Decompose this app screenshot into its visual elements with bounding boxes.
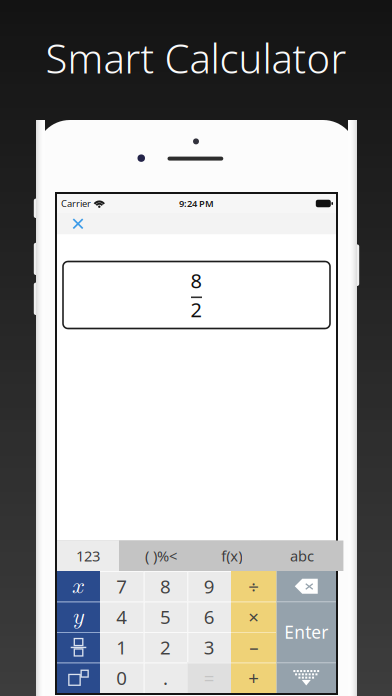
staticText: 9 xyxy=(204,574,215,599)
staticText: 𝑥 xyxy=(72,575,85,598)
button[interactable]: Variable y xyxy=(57,601,100,632)
button[interactable]: 123 xyxy=(57,540,119,571)
button[interactable]: Enter xyxy=(276,601,336,662)
button[interactable]: 3 xyxy=(187,632,231,662)
staticText: Enter xyxy=(284,620,328,643)
button[interactable]: Backspace xyxy=(276,571,336,601)
button[interactable]: Hide keyboard xyxy=(276,662,336,693)
staticText: ( )%< xyxy=(145,546,177,565)
staticText: ÷ xyxy=(248,574,259,599)
staticText: – xyxy=(249,635,258,660)
button[interactable]: 7 xyxy=(100,571,144,601)
staticText: . xyxy=(163,665,168,690)
staticText: 2 xyxy=(160,635,171,660)
button[interactable]: Variable x xyxy=(57,571,100,601)
staticText: 7 xyxy=(116,574,127,599)
button[interactable]: 8 xyxy=(144,571,187,601)
staticText: = xyxy=(204,665,215,690)
staticText: 4 xyxy=(116,604,127,629)
button[interactable]: 0 xyxy=(100,662,144,693)
staticText: + xyxy=(248,665,259,690)
staticText: × xyxy=(248,604,259,629)
button[interactable]: 4 xyxy=(100,601,144,632)
button[interactable]: Exponent xyxy=(57,662,100,693)
button[interactable]: ÷ xyxy=(231,571,276,601)
staticText: 0 xyxy=(116,665,127,690)
staticText: f(x) xyxy=(221,546,242,565)
button[interactable]: – xyxy=(231,632,276,662)
button[interactable]: × xyxy=(231,601,276,632)
staticText: 5 xyxy=(160,604,171,629)
button[interactable]: 9 xyxy=(187,571,231,601)
staticText: 3 xyxy=(204,635,215,660)
staticText: 1 xyxy=(116,635,127,660)
staticText: 6 xyxy=(204,604,215,629)
button[interactable]: 6 xyxy=(187,601,231,632)
button[interactable]: + xyxy=(231,662,276,693)
staticText: 2 xyxy=(190,296,201,323)
button[interactable]: 1 xyxy=(100,632,144,662)
staticText: 123 xyxy=(76,546,100,565)
staticText: 8 xyxy=(190,267,201,294)
button[interactable]: Close xyxy=(62,213,94,234)
staticText: 𝑦 xyxy=(73,605,84,628)
staticText: Carrier xyxy=(61,197,91,210)
button[interactable]: f(x) xyxy=(203,540,260,571)
button[interactable]: abc xyxy=(260,540,343,571)
staticText: 8 xyxy=(160,574,171,599)
button[interactable]: ( )%< xyxy=(119,540,203,571)
button[interactable]: = xyxy=(187,662,231,693)
staticText: 9:24 PM xyxy=(179,197,214,210)
staticText: Smart Calculator xyxy=(45,31,346,84)
button[interactable]: Fraction xyxy=(57,632,100,662)
button[interactable]: 5 xyxy=(144,601,187,632)
button[interactable]: 2 xyxy=(144,632,187,662)
staticText: abc xyxy=(290,546,314,565)
button[interactable]: . xyxy=(144,662,187,693)
